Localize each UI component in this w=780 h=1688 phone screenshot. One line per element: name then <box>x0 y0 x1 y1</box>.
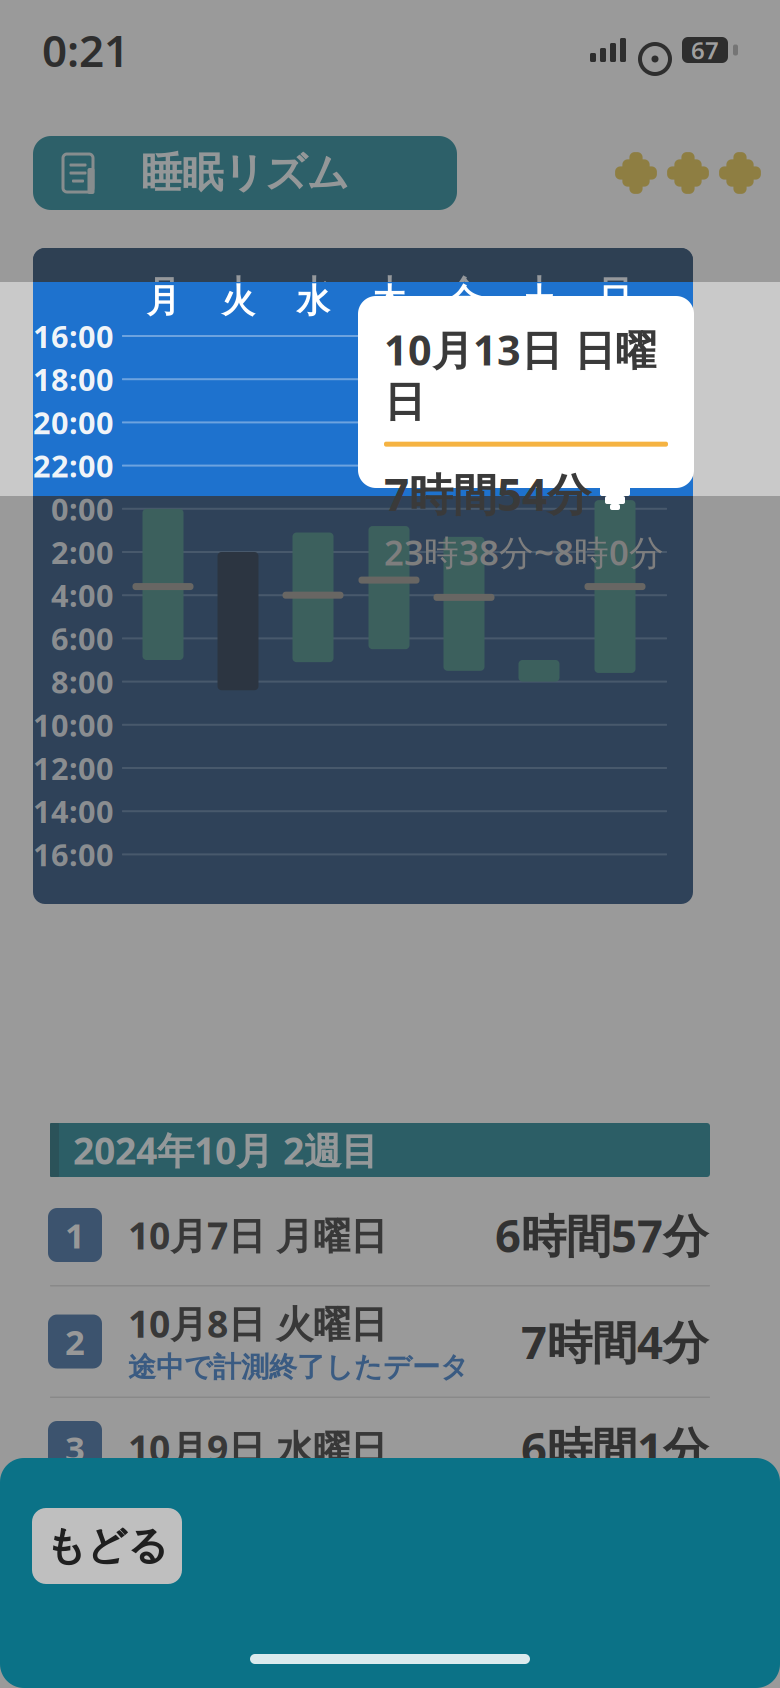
staticText: 火 <box>221 272 254 313</box>
staticText: 土 <box>522 272 555 313</box>
staticText: 22:00 <box>33 445 114 486</box>
staticText: 0:21 <box>42 21 129 79</box>
staticText: 途中で計測終了したデータ <box>128 1350 469 1384</box>
button[interactable]: 3 <box>30 1398 730 1498</box>
staticText: 18:00 <box>33 359 114 399</box>
staticText: 土 <box>522 280 555 321</box>
staticText: 10:00 <box>33 704 114 745</box>
staticText: 6時間1分 <box>521 1418 708 1478</box>
button[interactable]: 2 <box>30 1286 730 1396</box>
staticText: 6時間57分 <box>495 1205 708 1265</box>
staticText: もどる <box>45 1521 168 1570</box>
staticText: 睡眠リズム <box>141 148 349 198</box>
staticText: 水 <box>296 272 329 313</box>
staticText: 木 <box>372 272 405 313</box>
staticText: 7時間4分 <box>521 1311 708 1372</box>
staticText: 16:00 <box>33 316 114 356</box>
button[interactable]: もどる <box>32 1508 182 1584</box>
staticText: 6:00 <box>51 618 114 659</box>
staticText: 3 <box>65 1425 85 1471</box>
staticText: 1 <box>65 1212 85 1258</box>
staticText: 20:00 <box>33 402 114 443</box>
staticText: 14:00 <box>33 791 114 831</box>
staticText: 8:00 <box>51 661 114 702</box>
staticText: 0:00 <box>51 488 114 529</box>
staticText: 16:00 <box>33 834 114 875</box>
staticText: 10月7日 月曜日 <box>128 1210 387 1260</box>
staticText: 12:00 <box>33 748 114 788</box>
staticText: 4:00 <box>51 575 114 615</box>
staticText: 月 <box>146 280 179 321</box>
staticText: 23時38分~8時0分 <box>384 529 664 575</box>
staticText: 金 <box>447 280 480 321</box>
staticText: 7時間54分 <box>384 465 591 523</box>
staticText: 20:00 <box>33 402 114 443</box>
staticText: 2024年10月 2週目 <box>73 1125 378 1175</box>
staticText: 67 <box>691 34 719 66</box>
staticText: 水 <box>296 280 329 321</box>
staticText: 2 <box>65 1318 85 1364</box>
staticText: 22:00 <box>33 445 114 486</box>
staticText: 金 <box>447 272 480 313</box>
button[interactable]: 1 <box>30 1185 730 1285</box>
staticText: 2:00 <box>51 532 114 572</box>
staticText: 18:00 <box>33 359 114 399</box>
staticText: 火 <box>221 280 254 321</box>
staticText: 月 <box>146 272 179 313</box>
staticText: 10月9日 水曜日 <box>128 1423 387 1473</box>
staticText: 日 <box>598 280 631 321</box>
button[interactable]: 睡眠リズム <box>33 136 457 210</box>
staticText: 16:00 <box>33 316 114 356</box>
staticText: 10月13日 日曜日 <box>384 322 656 428</box>
staticText: 10月8日 火曜日 <box>128 1298 387 1348</box>
staticText: 日 <box>598 272 631 313</box>
staticText: 木 <box>372 280 405 321</box>
